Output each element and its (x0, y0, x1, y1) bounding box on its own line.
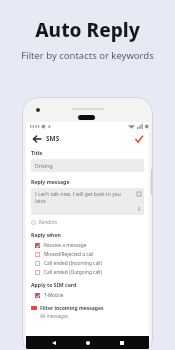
button[interactable]: Call ended (Incoming call) (31, 259, 144, 268)
staticText: All messages (40, 313, 68, 319)
button[interactable]: Home (81, 336, 94, 349)
staticText: Call ended (Incoming call) (44, 260, 102, 267)
staticText: Title (31, 149, 43, 156)
staticText: Missed/Rejected a call (44, 251, 94, 258)
button[interactable]: Driving (31, 159, 144, 172)
button[interactable]: Random (31, 219, 58, 225)
button[interactable]: T-Mobile (31, 291, 144, 300)
staticText: T-Mobile (44, 292, 64, 299)
button[interactable]: Back (31, 133, 42, 144)
staticText: Auto Reply (35, 17, 140, 43)
staticText: I can't talk now, I will get back to you… (35, 191, 129, 204)
button[interactable]: Receive a message (31, 241, 144, 250)
staticText: Call ended (Outgoing call) (44, 269, 103, 276)
button[interactable]: Save (133, 133, 144, 144)
staticText: Driving (35, 162, 53, 169)
staticText: Reply message (31, 178, 70, 185)
button[interactable]: Missed/Rejected a call (31, 250, 144, 259)
staticText: Apply to SIM card (31, 281, 77, 288)
button[interactable]: Filter incoming messages (31, 305, 144, 319)
staticText: Reply when (31, 231, 61, 238)
staticText: Filter by contacts or keywords (21, 49, 154, 62)
staticText: Filter incoming messages (40, 305, 104, 312)
staticText: SMS (46, 134, 60, 143)
button[interactable]: I can't talk now, I will get back to you… (31, 188, 144, 215)
staticText: Receive a message (44, 242, 87, 249)
button[interactable]: Recents (115, 336, 128, 349)
button[interactable]: Call ended (Outgoing call) (31, 268, 144, 277)
button[interactable]: Back (47, 336, 60, 349)
staticText: Random (39, 219, 58, 225)
